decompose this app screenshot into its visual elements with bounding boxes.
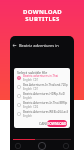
staticText: English CD1	[23, 87, 39, 91]
staticText: Beatriz.Adventures.In.Thai.BRRip	[23, 101, 68, 105]
staticText: Beatriz.adventures.in.Thai	[23, 74, 59, 78]
button[interactable]: Bea.Adventures.In.Thailand.720p	[14, 82, 70, 91]
staticText: English CD1	[23, 78, 39, 82]
button[interactable]: Beatriz.Adventures.HDRip.XviD	[14, 91, 70, 100]
staticText: Beatriz.Adventures.WEB.x264.ac3	[23, 110, 69, 114]
button[interactable]: Beatriz.Adventures.In.Thai.BRRip	[14, 100, 70, 109]
button[interactable]: Beatriz.Adventures.WEB.x264.ac3	[14, 109, 70, 118]
staticText: English	[23, 114, 32, 118]
staticText: English CD2	[23, 105, 39, 109]
staticText: Beatriz.Adventures.HDRip.XviD	[23, 92, 65, 96]
staticText: DOWNLOAD SUBTITLES	[23, 8, 62, 23]
button[interactable]: DOWNLOAD	[47, 120, 67, 127]
other: Next	[63, 143, 69, 149]
staticText: Beatriz adventures in Thail...	[19, 43, 71, 48]
button[interactable]: CANCEL	[38, 120, 53, 127]
staticText: Bea.Adventures.In.Thailand.720p	[23, 83, 68, 87]
other: Back	[12, 43, 17, 48]
other: Play	[38, 142, 46, 150]
staticText: Select subtitle file	[17, 70, 48, 75]
staticText: DOWNLOAD	[47, 122, 67, 126]
button[interactable]: Back	[10, 40, 74, 50]
staticText: CANCEL	[39, 121, 52, 126]
button[interactable]: Beatriz.adventures.in.Thai	[14, 73, 70, 82]
other: Previous	[15, 143, 21, 149]
staticText: English	[23, 96, 32, 100]
